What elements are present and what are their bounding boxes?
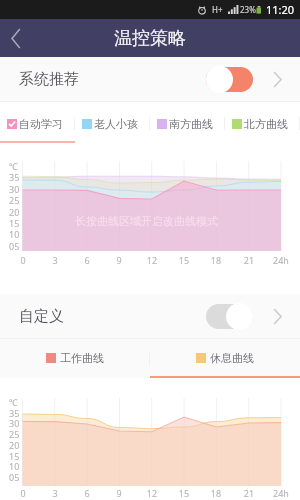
button[interactable]: 老人小孩 bbox=[75, 102, 150, 143]
staticText: 老人小孩 bbox=[94, 117, 138, 131]
staticText: 15 bbox=[9, 450, 20, 462]
staticText: 6 bbox=[72, 487, 102, 499]
button[interactable]: More bbox=[263, 299, 291, 333]
staticText: 21 bbox=[234, 487, 264, 499]
staticText: 30 bbox=[9, 417, 20, 429]
staticText: 12 bbox=[137, 254, 167, 266]
staticText: 系统推荐 bbox=[19, 70, 79, 89]
staticText: 自动学习 bbox=[19, 117, 63, 131]
staticText: 05 bbox=[9, 240, 20, 252]
staticText: 3 bbox=[40, 487, 70, 499]
staticText: ℃ bbox=[9, 160, 18, 172]
staticText: 9 bbox=[104, 254, 134, 266]
staticText: 20 bbox=[9, 206, 20, 218]
staticText: 休息曲线 bbox=[210, 351, 254, 365]
staticText: 18 bbox=[201, 254, 231, 266]
staticText: 11:20 bbox=[266, 2, 295, 17]
button[interactable]: 北方曲线 bbox=[225, 102, 300, 143]
button[interactable]: 自动学习 bbox=[0, 102, 75, 143]
staticText: 35 bbox=[9, 171, 20, 183]
staticText: 0 bbox=[8, 487, 38, 499]
button[interactable]: 南方曲线 bbox=[150, 102, 225, 143]
button[interactable]: More bbox=[263, 62, 291, 96]
staticText: 北方曲线 bbox=[244, 117, 288, 131]
button[interactable]: 自定义 bbox=[0, 294, 300, 338]
staticText: 15 bbox=[169, 254, 199, 266]
button[interactable]: Toggle bbox=[206, 302, 253, 330]
button[interactable]: 工作曲线 bbox=[0, 339, 150, 378]
staticText: 18 bbox=[201, 487, 231, 499]
staticText: 10 bbox=[9, 460, 20, 472]
staticText: 30 bbox=[9, 183, 20, 195]
staticText: 3 bbox=[40, 254, 70, 266]
staticText: 温控策略 bbox=[114, 27, 186, 50]
staticText: 长按曲线区域开启改曲线模式 bbox=[75, 214, 218, 228]
staticText: 24h bbox=[266, 487, 296, 499]
staticText: 15 bbox=[169, 487, 199, 499]
staticText: 15 bbox=[9, 217, 20, 229]
staticText: 25 bbox=[9, 194, 20, 206]
staticText: 05 bbox=[9, 471, 20, 483]
staticText: 6 bbox=[72, 254, 102, 266]
staticText: 10 bbox=[9, 228, 20, 240]
button[interactable]: Back bbox=[0, 19, 32, 57]
button[interactable]: Toggle bbox=[206, 65, 253, 93]
staticText: 20 bbox=[9, 439, 20, 451]
staticText: 23% bbox=[240, 4, 256, 15]
staticText: 21 bbox=[234, 254, 264, 266]
staticText: 工作曲线 bbox=[60, 351, 104, 365]
button[interactable]: 休息曲线 bbox=[150, 339, 300, 378]
staticText: 35 bbox=[9, 407, 20, 419]
staticText: 9 bbox=[104, 487, 134, 499]
staticText: 南方曲线 bbox=[169, 117, 213, 131]
staticText: 24h bbox=[266, 254, 296, 266]
staticText: H+ bbox=[212, 4, 223, 15]
staticText: 12 bbox=[137, 487, 167, 499]
staticText: 0 bbox=[8, 254, 38, 266]
staticText: ℃ bbox=[9, 396, 18, 408]
staticText: 25 bbox=[9, 428, 20, 440]
button[interactable]: 系统推荐 bbox=[0, 57, 300, 101]
staticText: 自定义 bbox=[19, 307, 64, 326]
